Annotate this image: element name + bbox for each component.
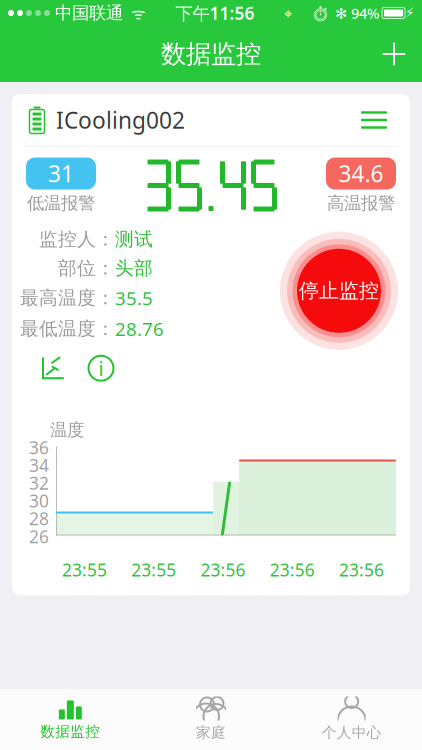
staticText: 家庭 — [196, 723, 226, 741]
staticText: ： — [96, 228, 115, 251]
staticText: ⌖ ⏱ ✻ 94% — [284, 3, 379, 23]
staticText: 下午11:56 — [175, 1, 254, 24]
button[interactable]: 详情 — [88, 355, 114, 381]
staticText: 23:56 — [339, 558, 384, 581]
staticText: 最低温度 — [20, 317, 96, 340]
staticText: 35.5 — [115, 286, 153, 310]
staticText: 部位 — [58, 257, 96, 280]
staticText: ： — [96, 257, 115, 280]
staticText: 23:56 — [200, 558, 245, 581]
button[interactable]: 停止监控 — [280, 232, 398, 350]
button[interactable]: 家庭 — [141, 690, 281, 747]
staticText: 23:56 — [270, 558, 315, 581]
staticText: 个人中心 — [322, 723, 382, 741]
staticText: 低温报警 — [27, 192, 95, 214]
button[interactable]: 菜单 — [354, 103, 394, 137]
staticText: ICooling002 — [56, 105, 185, 135]
staticText: 数据监控 — [161, 38, 261, 69]
staticText: 测试 — [115, 228, 153, 251]
staticText: 温度 — [50, 419, 84, 440]
staticText: 23:55 — [131, 558, 176, 581]
staticText: 28.76 — [115, 316, 164, 341]
staticText: 最高温度 — [20, 287, 96, 309]
staticText: 头部 — [115, 257, 153, 280]
staticText: 32 — [29, 471, 49, 494]
staticText: 中国联通 — [50, 2, 123, 24]
button[interactable]: 趋势图 — [40, 355, 66, 381]
staticText: 停止监控 — [299, 278, 379, 303]
staticText: i — [98, 355, 103, 381]
staticText: 23:55 — [62, 558, 107, 581]
staticText: 26 — [29, 525, 49, 548]
staticText: 28 — [29, 507, 49, 530]
staticText: ： — [96, 317, 115, 340]
staticText: 34 — [29, 454, 49, 477]
button[interactable]: 数据监控 — [0, 691, 141, 746]
staticText: 34.6 — [338, 158, 383, 188]
staticText: ： — [96, 287, 115, 309]
staticText: 30 — [29, 489, 49, 512]
staticText: 数据监控 — [40, 722, 100, 740]
staticText: 高温报警 — [327, 192, 395, 214]
staticText: ⚡︎ — [405, 5, 414, 20]
staticText: ᯤ — [123, 2, 146, 24]
staticText: 36 — [29, 436, 49, 459]
button[interactable]: 添加 — [372, 32, 416, 76]
staticText: 监控人 — [39, 228, 96, 251]
button[interactable]: 个人中心 — [281, 690, 422, 747]
staticText: 31 — [48, 158, 74, 188]
